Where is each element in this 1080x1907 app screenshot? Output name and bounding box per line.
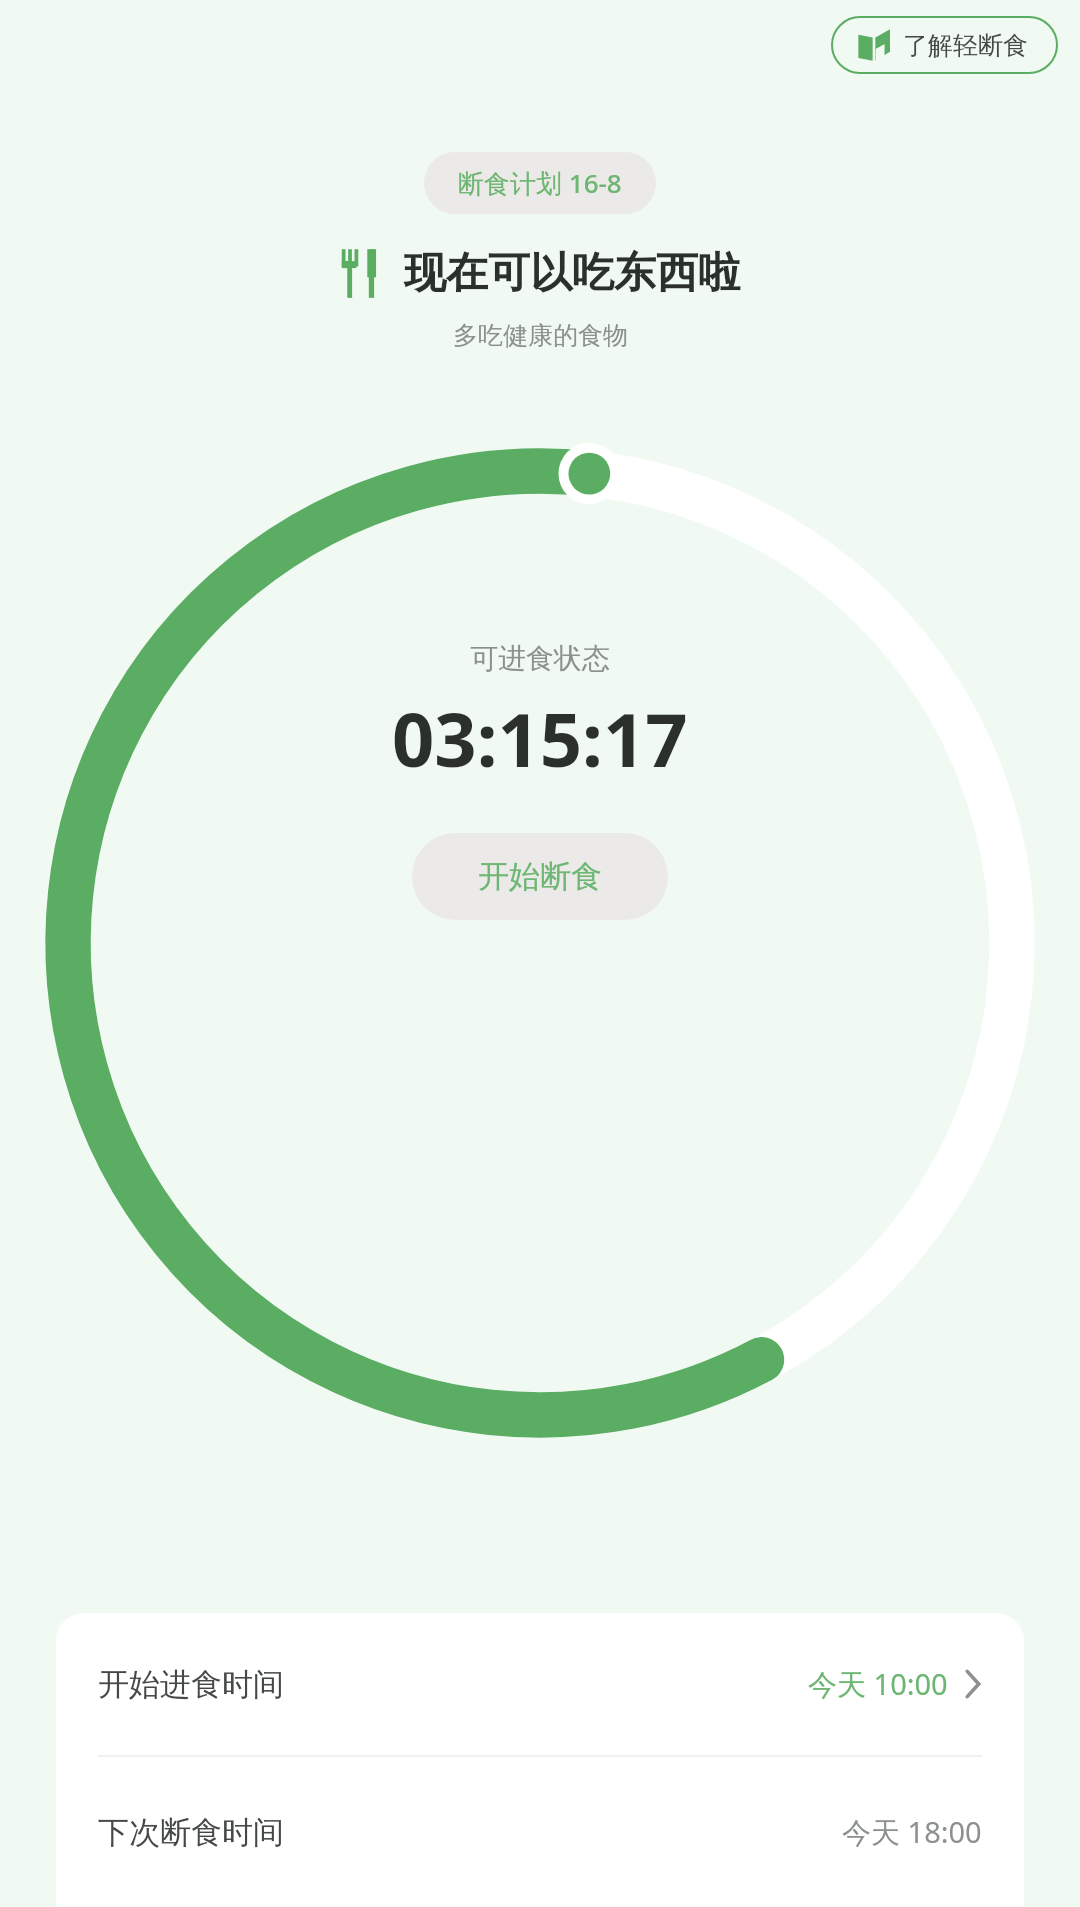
staticText: 今天 10:00 <box>808 1664 948 1704</box>
button[interactable]: 了解轻断食 <box>831 16 1058 74</box>
staticText: 了解轻断食 <box>903 30 1028 61</box>
staticText: 03:15:17 <box>392 688 688 789</box>
staticText: 开始断食 <box>478 857 602 896</box>
button[interactable]: 断食计划 16-8 <box>424 152 656 214</box>
staticText: 下次断食时间 <box>98 1813 284 1852</box>
staticText: 多吃健康的食物 <box>453 320 628 351</box>
button[interactable]: 开始进食时间 <box>56 1613 1024 1755</box>
button[interactable]: 开始断食 <box>412 833 668 920</box>
staticText: 今天 18:00 <box>842 1812 982 1852</box>
staticText: 断食计划 16-8 <box>458 165 622 201</box>
button[interactable]: 下次断食时间 <box>56 1757 1024 1907</box>
staticText: 现在可以吃东西啦 <box>404 247 740 300</box>
staticText: 可进食状态 <box>470 641 610 676</box>
staticText: 开始进食时间 <box>98 1665 284 1704</box>
